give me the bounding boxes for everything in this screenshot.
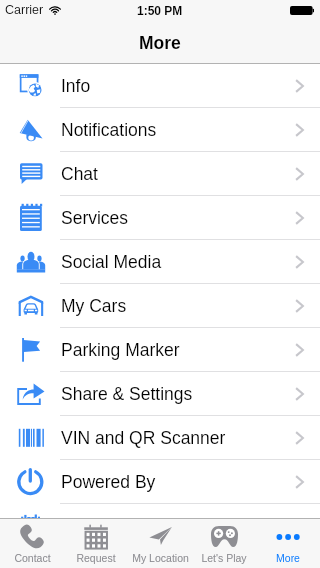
staticText: Share & Settings (61, 384, 294, 404)
button[interactable]: Social Media (0, 240, 320, 284)
staticText: Request (76, 552, 116, 564)
button[interactable]: Info (0, 64, 320, 108)
staticText: Social Media (61, 252, 294, 272)
other: My Location (147, 523, 174, 550)
button[interactable]: Notifications (0, 108, 320, 152)
other: More (275, 523, 302, 550)
staticText: My Location (132, 552, 189, 564)
staticText: VIN and QR Scanner (61, 428, 294, 448)
button[interactable]: Request (64, 518, 128, 568)
staticText: Powered By (61, 472, 294, 492)
staticText: Statistics (61, 516, 294, 536)
staticText: My Cars (61, 296, 294, 316)
button[interactable]: Services (0, 196, 320, 240)
staticText: More (276, 552, 300, 564)
other: Let's Play (211, 523, 238, 550)
other: Contact (19, 523, 46, 550)
staticText: Info (61, 76, 294, 96)
button[interactable]: My Cars (0, 284, 320, 328)
staticText: More (139, 33, 181, 53)
staticText: Carrier (5, 3, 44, 17)
staticText: Notifications (61, 120, 294, 140)
button[interactable]: Contact (0, 518, 64, 568)
button[interactable]: VIN and QR Scanner (0, 416, 320, 460)
button[interactable]: My Location (128, 518, 192, 568)
button[interactable]: More (256, 518, 320, 568)
other: Request (83, 523, 110, 550)
staticText: 1:50 PM (137, 4, 183, 17)
staticText: Parking Marker (61, 340, 294, 360)
button[interactable]: Statistics (0, 504, 320, 548)
staticText: Let's Play (201, 552, 247, 564)
button[interactable]: Let's Play (192, 518, 256, 568)
button[interactable]: Chat (0, 152, 320, 196)
staticText: Contact (14, 552, 51, 564)
staticText: Services (61, 208, 294, 228)
button[interactable]: Powered By (0, 460, 320, 504)
staticText: Chat (61, 164, 294, 184)
button[interactable]: Share & Settings (0, 372, 320, 416)
button[interactable]: Parking Marker (0, 328, 320, 372)
